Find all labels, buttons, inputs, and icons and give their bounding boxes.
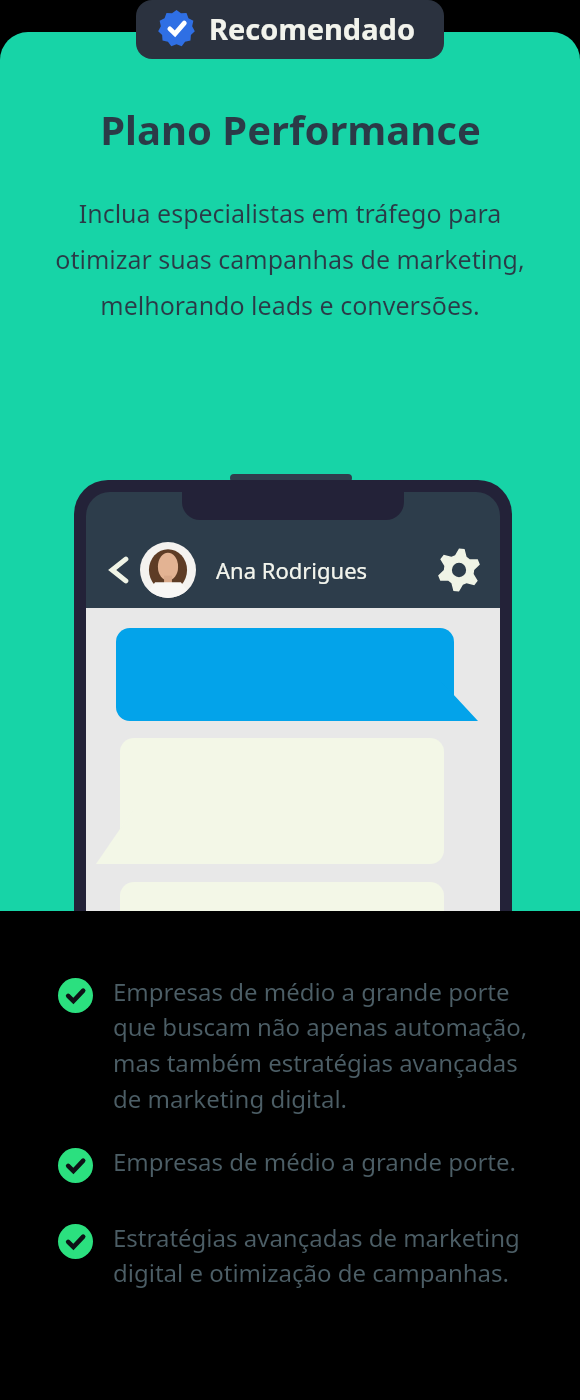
button[interactable]: Voltar [102, 553, 136, 587]
staticText: Empresas de médio a grande porte que bus… [113, 975, 540, 1115]
button[interactable]: Foto de Ana Rodrigues [140, 542, 196, 598]
staticText: Recomendado [209, 9, 416, 48]
staticText: Inclua especialistas em tráfego para oti… [46, 196, 534, 322]
button[interactable]: Empresas de médio a grande porte. [0, 1145, 580, 1183]
staticText: Estratégias avançadas de marketing digit… [113, 1221, 540, 1289]
staticText: Ana Rodrigues [216, 555, 368, 585]
button[interactable]: Verificado [136, 0, 444, 59]
button[interactable]: Estratégias avançadas de marketing digit… [0, 1221, 580, 1289]
other: Verificado [158, 10, 195, 47]
button[interactable]: Empresas de médio a grande porte que bus… [0, 975, 580, 1115]
staticText: Plano Performance [100, 102, 481, 156]
staticText: Empresas de médio a grande porte. [113, 1145, 516, 1178]
button[interactable]: Configurações [436, 547, 482, 593]
